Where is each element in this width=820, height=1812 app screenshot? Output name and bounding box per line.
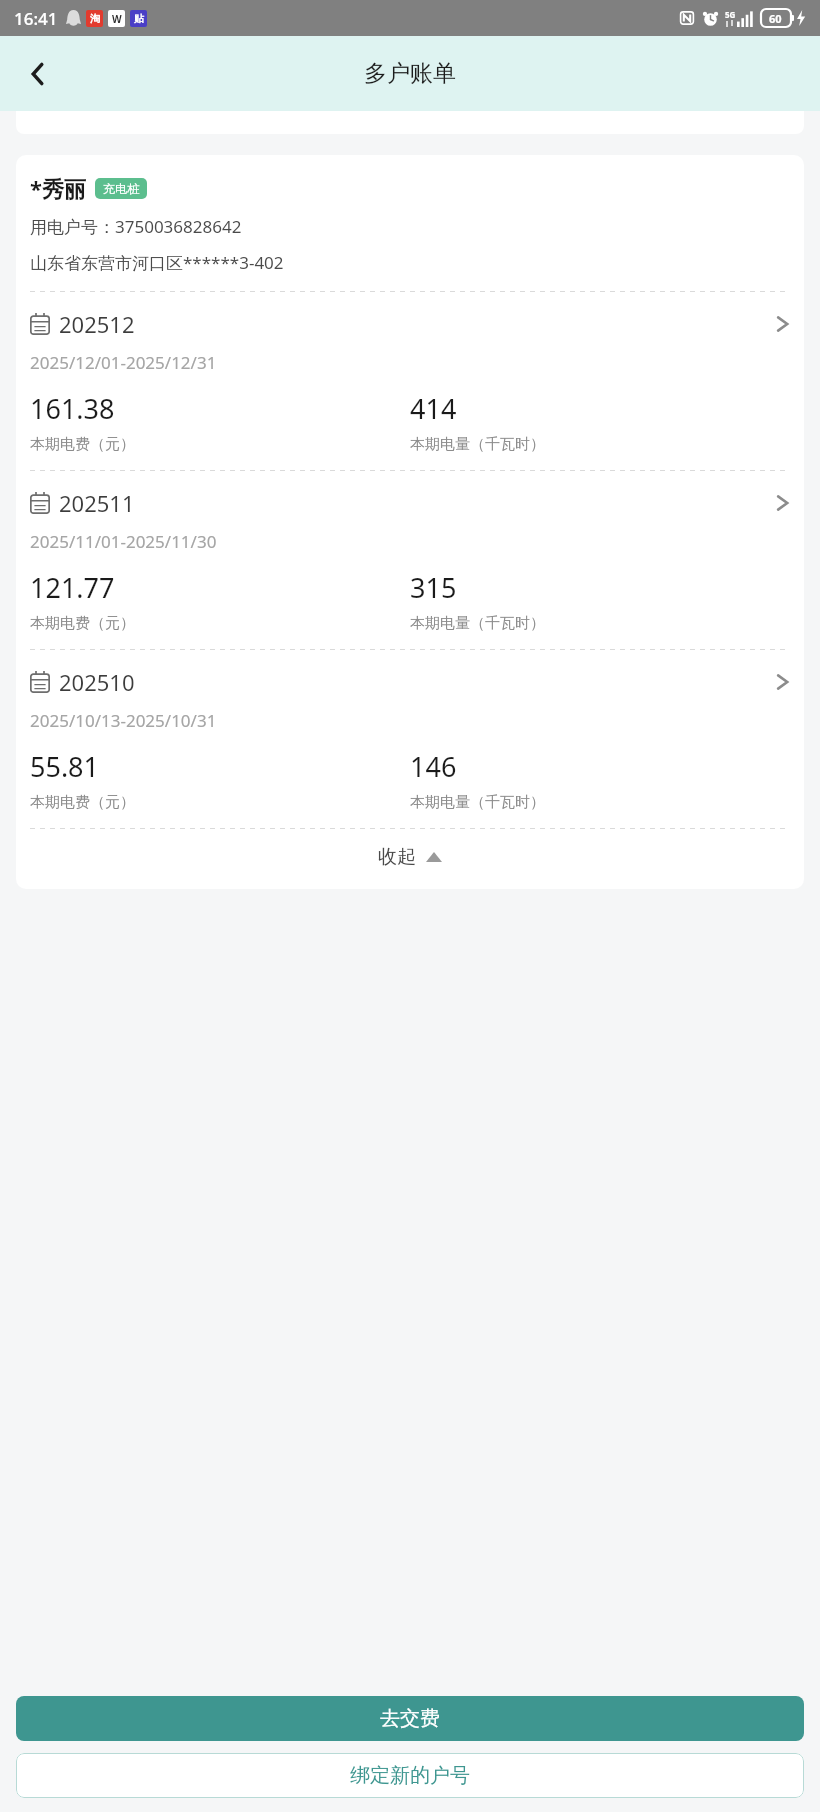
- staticText: 收起: [378, 845, 416, 869]
- staticText: 202512: [59, 309, 135, 339]
- staticText: 山东省东营市河口区******3-402: [30, 251, 284, 274]
- staticText: W: [112, 12, 122, 26]
- staticText: 绑定新的户号: [350, 1763, 470, 1788]
- staticText: 414: [410, 390, 457, 427]
- staticText: 去交费: [380, 1706, 440, 1731]
- staticText: 充电桩: [103, 181, 139, 196]
- button[interactable]: Back: [10, 46, 66, 102]
- button[interactable]: 绑定新的户号: [16, 1753, 804, 1798]
- staticText: 本期电费（元）: [30, 793, 135, 812]
- staticText: 55.81: [30, 748, 100, 785]
- staticText: 161.38: [30, 390, 115, 427]
- staticText: 146: [410, 748, 457, 785]
- staticText: 淘: [90, 12, 100, 25]
- staticText: 202511: [59, 488, 135, 518]
- staticText: 本期电量（千瓦时）: [410, 614, 545, 633]
- staticText: 本期电费（元）: [30, 614, 135, 633]
- staticText: 315: [410, 569, 457, 606]
- staticText: 16:41: [14, 7, 58, 30]
- staticText: 2025/12/01-2025/12/31: [30, 351, 217, 374]
- button[interactable]: 202511: [30, 471, 790, 649]
- button[interactable]: 202512: [30, 292, 790, 470]
- staticText: 用电户号：3750036828642: [30, 215, 242, 238]
- staticText: 本期电量（千瓦时）: [410, 793, 545, 812]
- staticText: 贴: [134, 12, 144, 25]
- staticText: 本期电费（元）: [30, 435, 135, 454]
- staticText: 121.77: [30, 569, 115, 606]
- staticText: *秀丽: [30, 173, 86, 203]
- button[interactable]: 收起: [30, 829, 790, 885]
- button[interactable]: 去交费: [16, 1696, 804, 1741]
- staticText: 多户账单: [364, 59, 456, 88]
- staticText: 60: [769, 11, 782, 26]
- staticText: 本期电量（千瓦时）: [410, 435, 545, 454]
- button[interactable]: 202510: [30, 650, 790, 828]
- staticText: 2025/11/01-2025/11/30: [30, 530, 217, 553]
- staticText: 5G: [725, 9, 736, 20]
- staticText: 202510: [59, 667, 135, 697]
- staticText: 2025/10/13-2025/10/31: [30, 709, 217, 732]
